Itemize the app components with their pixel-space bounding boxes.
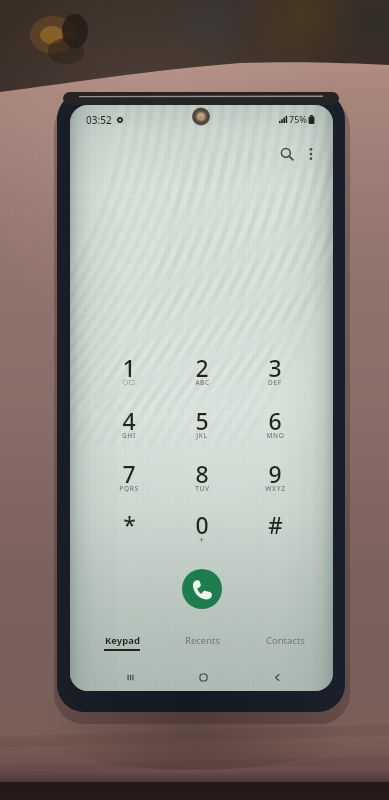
staticText: 3 <box>268 352 282 383</box>
staticText: WXYZ <box>265 484 286 493</box>
staticText: 8 <box>195 458 209 489</box>
staticText: * <box>123 509 136 540</box>
staticText: JKL <box>196 431 208 440</box>
button[interactable]: 8 <box>169 449 235 497</box>
staticText: Contacts <box>266 634 305 647</box>
staticText: ABC <box>195 378 210 387</box>
button[interactable]: 6 <box>242 396 308 444</box>
button[interactable]: Home <box>183 663 223 691</box>
button[interactable]: Keypad <box>86 634 158 660</box>
staticText: ○□ <box>122 378 136 386</box>
staticText: GHI <box>122 431 136 440</box>
staticText: 4 <box>122 405 136 436</box>
button[interactable]: More options <box>299 142 323 166</box>
staticText: Recents <box>185 634 221 647</box>
button[interactable]: 9 <box>242 449 308 497</box>
button[interactable]: Recents <box>167 634 239 660</box>
button[interactable]: * <box>96 500 162 548</box>
button[interactable]: 2 <box>169 343 235 391</box>
staticText: DEF <box>268 378 282 387</box>
staticText: PQRS <box>119 484 139 493</box>
staticText: 0 <box>195 509 209 540</box>
staticText: 75% <box>289 113 307 125</box>
button[interactable]: Recent apps <box>110 663 150 691</box>
staticText: 6 <box>268 405 282 436</box>
staticText: 2 <box>195 352 209 383</box>
button[interactable]: 4 <box>96 396 162 444</box>
button[interactable]: Search <box>275 142 299 166</box>
staticText: TUV <box>195 484 210 493</box>
staticText: Keypad <box>105 634 140 647</box>
button[interactable]: 1 <box>96 343 162 391</box>
button[interactable]: 0 <box>169 500 235 548</box>
staticText: # <box>268 509 283 540</box>
button[interactable]: # <box>242 500 308 548</box>
staticText: MNO <box>266 431 285 440</box>
staticText: + <box>199 534 205 545</box>
button[interactable]: Call <box>182 569 222 609</box>
button[interactable]: 3 <box>242 343 308 391</box>
button[interactable]: Back <box>257 663 297 691</box>
staticText: 5 <box>195 405 209 436</box>
button[interactable]: 7 <box>96 449 162 497</box>
staticText: 03:52 <box>86 113 112 127</box>
button[interactable]: 5 <box>169 396 235 444</box>
button[interactable]: Contacts <box>249 634 321 660</box>
staticText: 7 <box>122 458 136 489</box>
staticText: 1 <box>122 352 136 383</box>
staticText: 9 <box>268 458 282 489</box>
